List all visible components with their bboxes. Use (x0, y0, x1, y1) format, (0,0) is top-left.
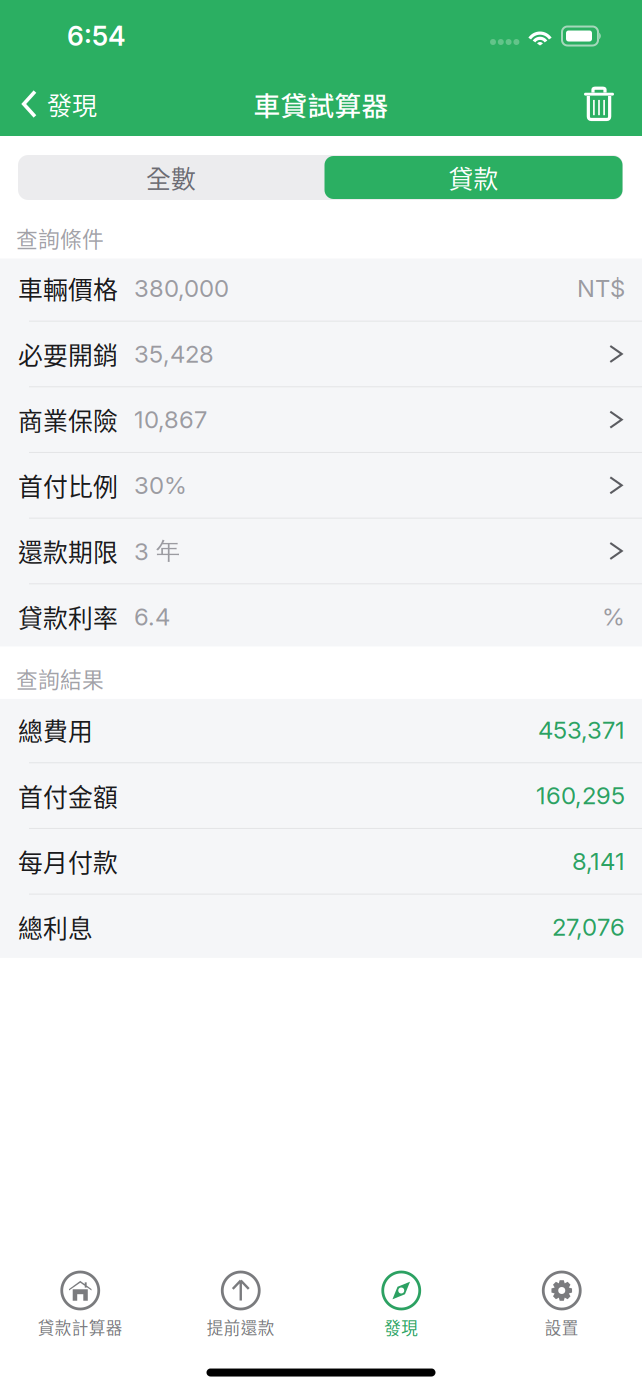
staticText: 發現 (47, 86, 97, 122)
button[interactable]: 總費用 (0, 698, 642, 762)
staticText: 貸款利率 (18, 599, 118, 635)
staticText: 30% (134, 471, 187, 500)
button[interactable]: 首付金額 (0, 763, 642, 828)
staticText: 27,076 (552, 912, 625, 941)
button[interactable]: 全數 (17, 155, 324, 200)
staticText: 車輛價格 (18, 270, 118, 306)
button[interactable]: 每月付款 (0, 829, 642, 894)
staticText: 查詢條件 (16, 222, 104, 253)
button[interactable]: 總利息 (0, 895, 642, 959)
staticText: 453,371 (538, 715, 625, 744)
staticText: 貸款 (448, 159, 498, 195)
staticText: 總利息 (18, 909, 93, 945)
staticText: 全數 (146, 159, 196, 195)
staticText: 貸款計算器 (38, 1315, 123, 1339)
staticText: 首付比例 (18, 467, 118, 503)
staticText: 8,141 (572, 847, 625, 876)
button[interactable]: Delete (572, 72, 626, 136)
staticText: 提前還款 (207, 1315, 275, 1339)
staticText: 還款期限 (18, 533, 118, 569)
staticText: 商業保險 (18, 402, 118, 438)
button[interactable]: 發現 (0, 72, 111, 136)
button[interactable]: 車輛價格 (0, 256, 642, 321)
button[interactable]: 商業保險 (0, 387, 642, 452)
button[interactable]: 首付比例 (0, 453, 642, 518)
button[interactable]: 提前還款 (160, 1208, 321, 1356)
staticText: 必要開銷 (18, 336, 118, 372)
staticText: 查詢結果 (16, 662, 104, 694)
button[interactable]: 必要開銷 (0, 322, 642, 386)
staticText: 總費用 (18, 712, 93, 748)
button[interactable]: 發現 (321, 1208, 481, 1356)
staticText: 380,000 (134, 274, 229, 303)
button[interactable]: 貸款利率 (0, 584, 642, 649)
button[interactable]: 設置 (481, 1208, 642, 1356)
staticText: 160,295 (536, 781, 625, 810)
staticText: % (602, 602, 625, 631)
staticText: 發現 (384, 1315, 418, 1339)
button[interactable]: 還款期限 (0, 519, 642, 583)
button[interactable]: 貸款計算器 (0, 1208, 160, 1356)
staticText: 每月付款 (18, 843, 118, 879)
staticText: 首付金額 (18, 778, 118, 813)
staticText: 35,428 (134, 339, 214, 368)
staticText: 3 年 (134, 536, 180, 566)
staticText: 設置 (545, 1315, 579, 1339)
staticText: 10,867 (134, 405, 207, 434)
staticText: 6.4 (134, 602, 170, 631)
staticText: NT$ (577, 274, 625, 303)
staticText: 6:54 (67, 20, 126, 52)
button[interactable]: 貸款 (324, 156, 622, 199)
staticText: 車貸試算器 (253, 85, 388, 123)
